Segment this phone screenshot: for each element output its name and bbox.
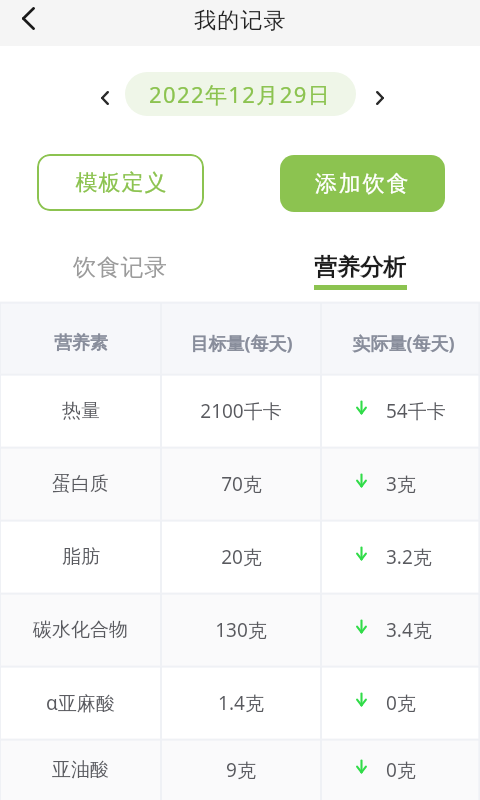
staticText: 2022年12月29日 xyxy=(149,79,332,109)
button[interactable]: 营养分析 xyxy=(240,211,480,301)
button[interactable]: 2022年12月29日 xyxy=(125,72,356,116)
button[interactable]: 添加饮食 xyxy=(280,155,445,212)
staticText: 添加饮食 xyxy=(315,170,411,198)
button[interactable]: Back xyxy=(10,0,46,36)
staticText: 130克 xyxy=(215,617,267,643)
button[interactable]: α亚麻酸 xyxy=(0,666,480,739)
staticText: 9克 xyxy=(226,757,256,783)
staticText: α亚麻酸 xyxy=(46,690,115,716)
staticText: 热量 xyxy=(62,399,100,423)
staticText: 模板定义 xyxy=(75,169,167,197)
staticText: 饮食记录 xyxy=(73,253,168,282)
button[interactable]: 饮食记录 xyxy=(0,211,240,301)
staticText: 实际量(每天) xyxy=(352,331,455,356)
staticText: 亚油酸 xyxy=(52,758,109,782)
button[interactable]: 碳水化合物 xyxy=(0,593,480,666)
staticText: 1.4克 xyxy=(218,690,264,716)
staticText: 我的记录 xyxy=(194,7,287,35)
staticText: 0克 xyxy=(386,757,416,783)
button[interactable]: Previous day xyxy=(91,84,119,112)
button[interactable]: 蛋白质 xyxy=(0,447,480,520)
staticText: 碳水化合物 xyxy=(33,618,128,642)
staticText: 3克 xyxy=(386,471,416,497)
button[interactable]: Next day xyxy=(366,84,394,112)
staticText: 营养素 xyxy=(54,332,108,355)
staticText: 3.2克 xyxy=(386,544,432,570)
staticText: 营养分析 xyxy=(314,253,406,282)
staticText: 脂肪 xyxy=(62,545,100,569)
staticText: 目标量(每天) xyxy=(190,331,293,356)
staticText: 蛋白质 xyxy=(52,472,109,496)
staticText: 20克 xyxy=(221,544,262,570)
staticText: 2100千卡 xyxy=(200,398,282,424)
button[interactable]: 模板定义 xyxy=(37,154,204,211)
button[interactable]: 脂肪 xyxy=(0,520,480,593)
staticText: 0克 xyxy=(386,690,416,716)
staticText: 70克 xyxy=(221,471,262,497)
button[interactable]: 亚油酸 xyxy=(0,739,480,800)
staticText: 54千卡 xyxy=(386,398,446,424)
staticText: 3.4克 xyxy=(386,617,432,643)
button[interactable]: 热量 xyxy=(0,374,480,447)
